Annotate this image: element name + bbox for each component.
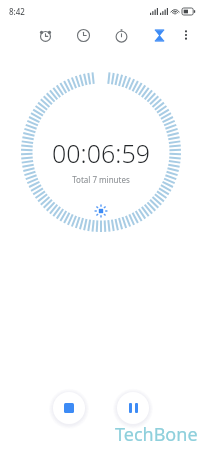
staticText: 00:06:59: [52, 136, 150, 170]
staticText: 8:42: [9, 6, 25, 17]
button[interactable]: More options: [174, 23, 198, 47]
button[interactable]: Stopwatch: [110, 24, 132, 46]
button[interactable]: Alarm: [34, 24, 56, 46]
button[interactable]: Timer: [148, 24, 170, 46]
staticText: TechBone: [115, 422, 198, 447]
button[interactable]: Pause: [117, 392, 149, 424]
button[interactable]: Stop: [53, 392, 85, 424]
button[interactable]: Keep screen on: [91, 201, 111, 221]
staticText: Total 7 minutes: [72, 174, 130, 185]
button[interactable]: World clock: [72, 24, 94, 46]
